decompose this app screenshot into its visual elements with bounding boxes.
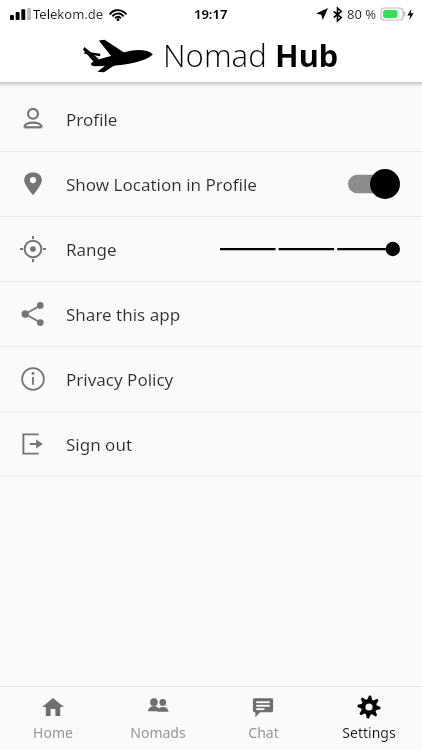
- button[interactable]: Show Location in Profile: [0, 152, 422, 216]
- staticText: Nomads: [130, 723, 186, 742]
- staticText: Home: [33, 723, 73, 742]
- staticText: 80 %: [347, 5, 377, 23]
- staticText: Nomad: [163, 34, 275, 76]
- button[interactable]: Sign out: [0, 412, 422, 476]
- button[interactable]: Nomads: [105, 687, 210, 750]
- staticText: Settings: [342, 723, 396, 742]
- button[interactable]: Profile: [0, 87, 422, 151]
- staticText: Range: [66, 238, 117, 261]
- button[interactable]: Show location toggle: [348, 169, 400, 199]
- staticText: Chat: [248, 723, 279, 742]
- button[interactable]: Home: [0, 687, 105, 750]
- button[interactable]: Privacy Policy: [0, 347, 422, 411]
- button[interactable]: Chat: [210, 687, 316, 750]
- button[interactable]: Range: [0, 217, 422, 281]
- staticText: Sign out: [66, 433, 133, 456]
- staticText: Show Location in Profile: [66, 173, 257, 196]
- button[interactable]: Range slider: [220, 234, 400, 264]
- staticText: Hub: [275, 34, 339, 76]
- button[interactable]: Settings: [316, 687, 422, 750]
- staticText: 19:17: [194, 5, 228, 23]
- staticText: Share this app: [66, 303, 181, 326]
- staticText: Privacy Policy: [66, 368, 174, 391]
- button[interactable]: Share this app: [0, 282, 422, 346]
- staticText: Profile: [66, 108, 118, 131]
- staticText: Telekom.de: [33, 5, 104, 23]
